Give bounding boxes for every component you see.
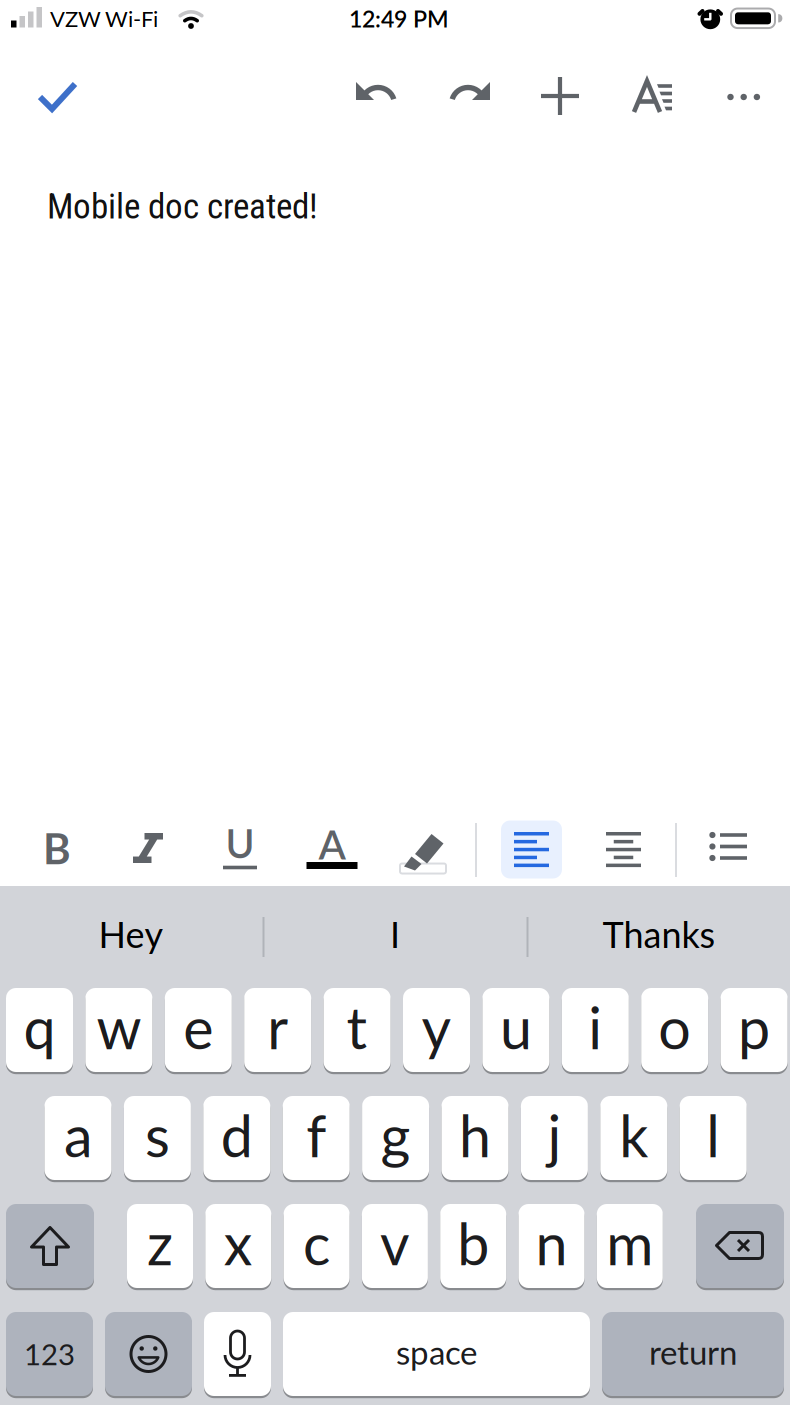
staticText: c bbox=[303, 1209, 330, 1277]
staticText: k bbox=[619, 1101, 648, 1169]
button[interactable]: o bbox=[641, 986, 708, 1074]
staticText: x bbox=[224, 1209, 253, 1277]
staticText: o bbox=[658, 993, 691, 1061]
staticText: 123 bbox=[24, 1336, 75, 1372]
staticText: n bbox=[535, 1209, 567, 1277]
staticText: i bbox=[588, 993, 602, 1061]
button[interactable]: g bbox=[362, 1094, 429, 1182]
button[interactable]: Align left bbox=[501, 820, 562, 878]
staticText: y bbox=[421, 993, 451, 1061]
button[interactable]: Undo bbox=[350, 68, 406, 124]
staticText: g bbox=[381, 1101, 411, 1169]
staticText: f bbox=[306, 1101, 326, 1169]
staticText: h bbox=[459, 1101, 491, 1169]
staticText: return bbox=[649, 1332, 737, 1372]
staticText: 12:49 PM bbox=[349, 5, 449, 32]
button[interactable]: Shift bbox=[6, 1202, 94, 1290]
button[interactable]: return bbox=[602, 1310, 784, 1398]
button[interactable]: a bbox=[44, 1094, 111, 1182]
button[interactable]: x bbox=[205, 1202, 271, 1290]
staticText: Hey bbox=[98, 912, 163, 956]
button[interactable]: Bulleted list bbox=[709, 831, 749, 867]
button[interactable]: j bbox=[521, 1094, 588, 1182]
button[interactable]: I bbox=[275, 898, 515, 970]
staticText: j bbox=[547, 1101, 561, 1169]
button[interactable]: Done bbox=[29, 68, 85, 124]
button[interactable]: Emoji bbox=[105, 1310, 192, 1398]
button[interactable]: Format bbox=[624, 68, 680, 124]
staticText: d bbox=[221, 1101, 253, 1169]
button[interactable]: n bbox=[518, 1202, 584, 1290]
button[interactable]: t bbox=[324, 986, 391, 1074]
button[interactable]: u bbox=[482, 986, 549, 1074]
button[interactable]: k bbox=[600, 1094, 667, 1182]
staticText: v bbox=[380, 1209, 410, 1277]
staticText: l bbox=[706, 1101, 720, 1169]
button[interactable]: s bbox=[124, 1094, 191, 1182]
button[interactable]: p bbox=[721, 986, 788, 1074]
button[interactable]: r bbox=[244, 986, 311, 1074]
button[interactable]: 123 bbox=[6, 1310, 93, 1398]
staticText: e bbox=[183, 993, 213, 1061]
button[interactable]: Underline bbox=[209, 817, 271, 879]
staticText: U bbox=[225, 819, 254, 867]
staticText: q bbox=[23, 993, 55, 1061]
button[interactable]: Dictate bbox=[204, 1310, 271, 1398]
button[interactable]: Highlight color bbox=[393, 818, 455, 880]
button[interactable]: Redo bbox=[440, 68, 496, 124]
button[interactable]: Align center bbox=[606, 832, 641, 867]
staticText: r bbox=[267, 993, 288, 1061]
staticText: A bbox=[318, 820, 345, 868]
staticText: Thanks bbox=[602, 912, 715, 956]
staticText: b bbox=[457, 1209, 489, 1277]
button[interactable]: b bbox=[440, 1202, 506, 1290]
staticText: a bbox=[64, 1101, 92, 1169]
button[interactable]: h bbox=[441, 1094, 508, 1182]
button[interactable]: Insert bbox=[532, 68, 588, 124]
staticText: u bbox=[500, 993, 532, 1061]
staticText: s bbox=[145, 1101, 170, 1169]
button[interactable]: space bbox=[283, 1310, 590, 1398]
button[interactable]: i bbox=[562, 986, 629, 1074]
staticText: B bbox=[43, 823, 71, 873]
staticText: space bbox=[396, 1332, 477, 1372]
button[interactable]: Thanks bbox=[539, 898, 779, 970]
button[interactable]: Text color bbox=[301, 817, 363, 879]
button[interactable]: Delete bbox=[696, 1202, 784, 1290]
button[interactable]: m bbox=[597, 1202, 663, 1290]
button[interactable]: f bbox=[283, 1094, 350, 1182]
button[interactable]: z bbox=[127, 1202, 193, 1290]
button[interactable]: l bbox=[680, 1094, 747, 1182]
staticText: t bbox=[347, 993, 368, 1061]
button[interactable]: Hey bbox=[11, 898, 251, 970]
button[interactable]: Italic bbox=[117, 817, 179, 879]
button[interactable]: v bbox=[362, 1202, 428, 1290]
staticText: p bbox=[738, 993, 770, 1061]
staticText: w bbox=[96, 993, 141, 1061]
button[interactable]: y bbox=[403, 986, 470, 1074]
button[interactable]: w bbox=[85, 986, 152, 1074]
staticText: m bbox=[606, 1209, 653, 1277]
button[interactable]: e bbox=[165, 986, 232, 1074]
staticText: VZW Wi-Fi bbox=[50, 5, 158, 32]
button[interactable]: More options bbox=[721, 88, 766, 106]
button[interactable]: c bbox=[284, 1202, 350, 1290]
button[interactable]: q bbox=[6, 986, 73, 1074]
button[interactable]: Bold bbox=[26, 817, 88, 879]
staticText: I bbox=[390, 912, 400, 956]
button[interactable]: d bbox=[203, 1094, 270, 1182]
staticText: z bbox=[147, 1209, 173, 1277]
staticText: Mobile doc created! bbox=[47, 186, 318, 227]
